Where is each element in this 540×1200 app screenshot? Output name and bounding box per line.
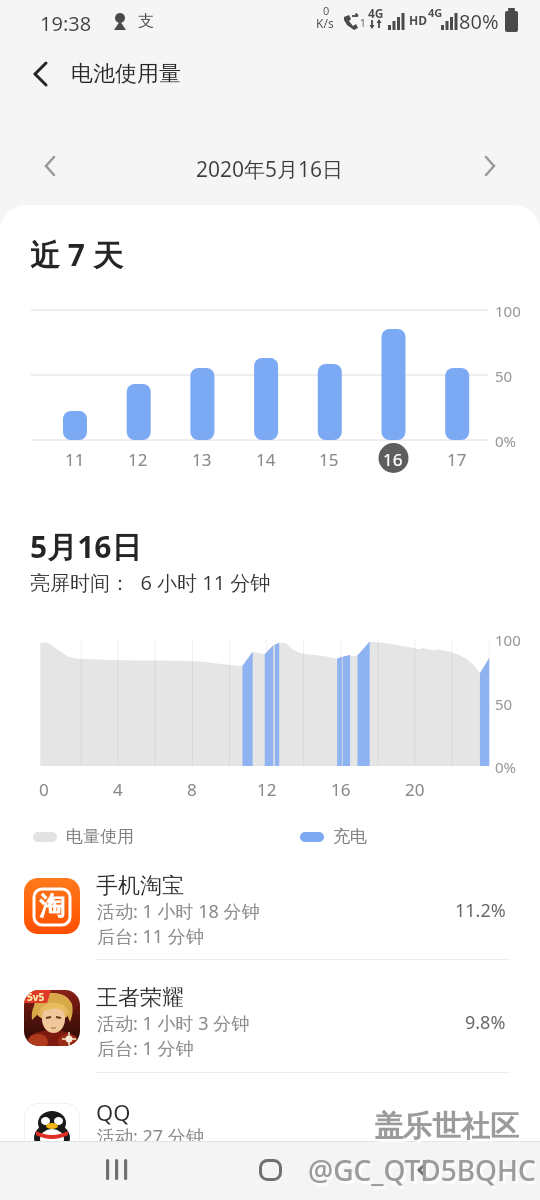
staticText: 活动: 1 小时 3 分钟 xyxy=(97,1011,250,1036)
staticText: 0 xyxy=(39,778,49,801)
staticText: 0 xyxy=(323,3,330,18)
staticText: 2020年5月16日 xyxy=(196,155,344,184)
staticText: K/s xyxy=(316,15,334,31)
staticText: 电池使用量 xyxy=(71,60,181,88)
staticText: 盖乐世社区 xyxy=(374,1108,519,1145)
button[interactable]: 5v5 xyxy=(0,978,540,1070)
staticText: HD xyxy=(409,12,427,28)
staticText: 充电 xyxy=(333,826,367,847)
staticText: 后台: 11 分钟 xyxy=(97,924,204,949)
staticText: 手机淘宝 xyxy=(96,872,184,900)
staticText: 17 xyxy=(447,448,467,471)
staticText: 0% xyxy=(495,431,517,451)
staticText: 5v5 xyxy=(27,990,45,1004)
button[interactable] xyxy=(398,1147,450,1193)
staticText: 16 xyxy=(331,778,351,801)
staticText: 电量使用 xyxy=(66,826,134,847)
staticText: 活动: 1 小时 18 分钟 xyxy=(97,899,260,924)
staticText: 16 xyxy=(383,448,403,471)
staticText: 亮屏时间： 6 小时 11 分钟 xyxy=(30,569,271,596)
staticText: 50 xyxy=(495,366,513,386)
staticText: 4G xyxy=(368,5,384,21)
button[interactable] xyxy=(20,56,64,92)
staticText: 12 xyxy=(128,448,148,471)
staticText: 4 xyxy=(113,778,123,801)
staticText: 1 xyxy=(360,16,366,30)
staticText: 8 xyxy=(187,778,197,801)
staticText: 11.2% xyxy=(455,898,506,923)
staticText: 15 xyxy=(319,448,339,471)
button[interactable] xyxy=(92,1147,144,1193)
staticText: 12 xyxy=(257,778,277,801)
button[interactable] xyxy=(244,1147,296,1193)
staticText: 100 xyxy=(495,630,521,650)
staticText: 淘 xyxy=(39,890,65,923)
staticText: 20 xyxy=(405,778,425,801)
staticText: 80% xyxy=(459,8,499,35)
staticText: 支 xyxy=(138,11,154,31)
staticText: 9.8% xyxy=(465,1010,506,1035)
button[interactable] xyxy=(30,148,70,184)
staticText: 5月16日 xyxy=(30,526,142,567)
staticText: 近 7 天 xyxy=(30,234,123,275)
staticText: 13 xyxy=(192,448,212,471)
staticText: 后台: 1 分钟 xyxy=(97,1036,194,1061)
staticText: 0% xyxy=(495,757,517,777)
button[interactable]: QQ xyxy=(0,1091,540,1183)
staticText: 19:38 xyxy=(40,10,92,37)
staticText: @GC_QTD5BQHC xyxy=(308,1151,536,1189)
staticText: 100 xyxy=(495,301,521,321)
button[interactable]: 淘 xyxy=(0,866,540,958)
staticText: 活动: 27 分钟 xyxy=(97,1124,204,1149)
staticText: 11 xyxy=(65,448,85,471)
staticText: QQ xyxy=(96,1097,131,1127)
staticText: 50 xyxy=(495,694,513,714)
button[interactable] xyxy=(470,148,510,184)
staticText: 4G xyxy=(428,5,443,20)
staticText: 14 xyxy=(256,448,276,471)
staticText: 王者荣耀 xyxy=(96,984,184,1012)
